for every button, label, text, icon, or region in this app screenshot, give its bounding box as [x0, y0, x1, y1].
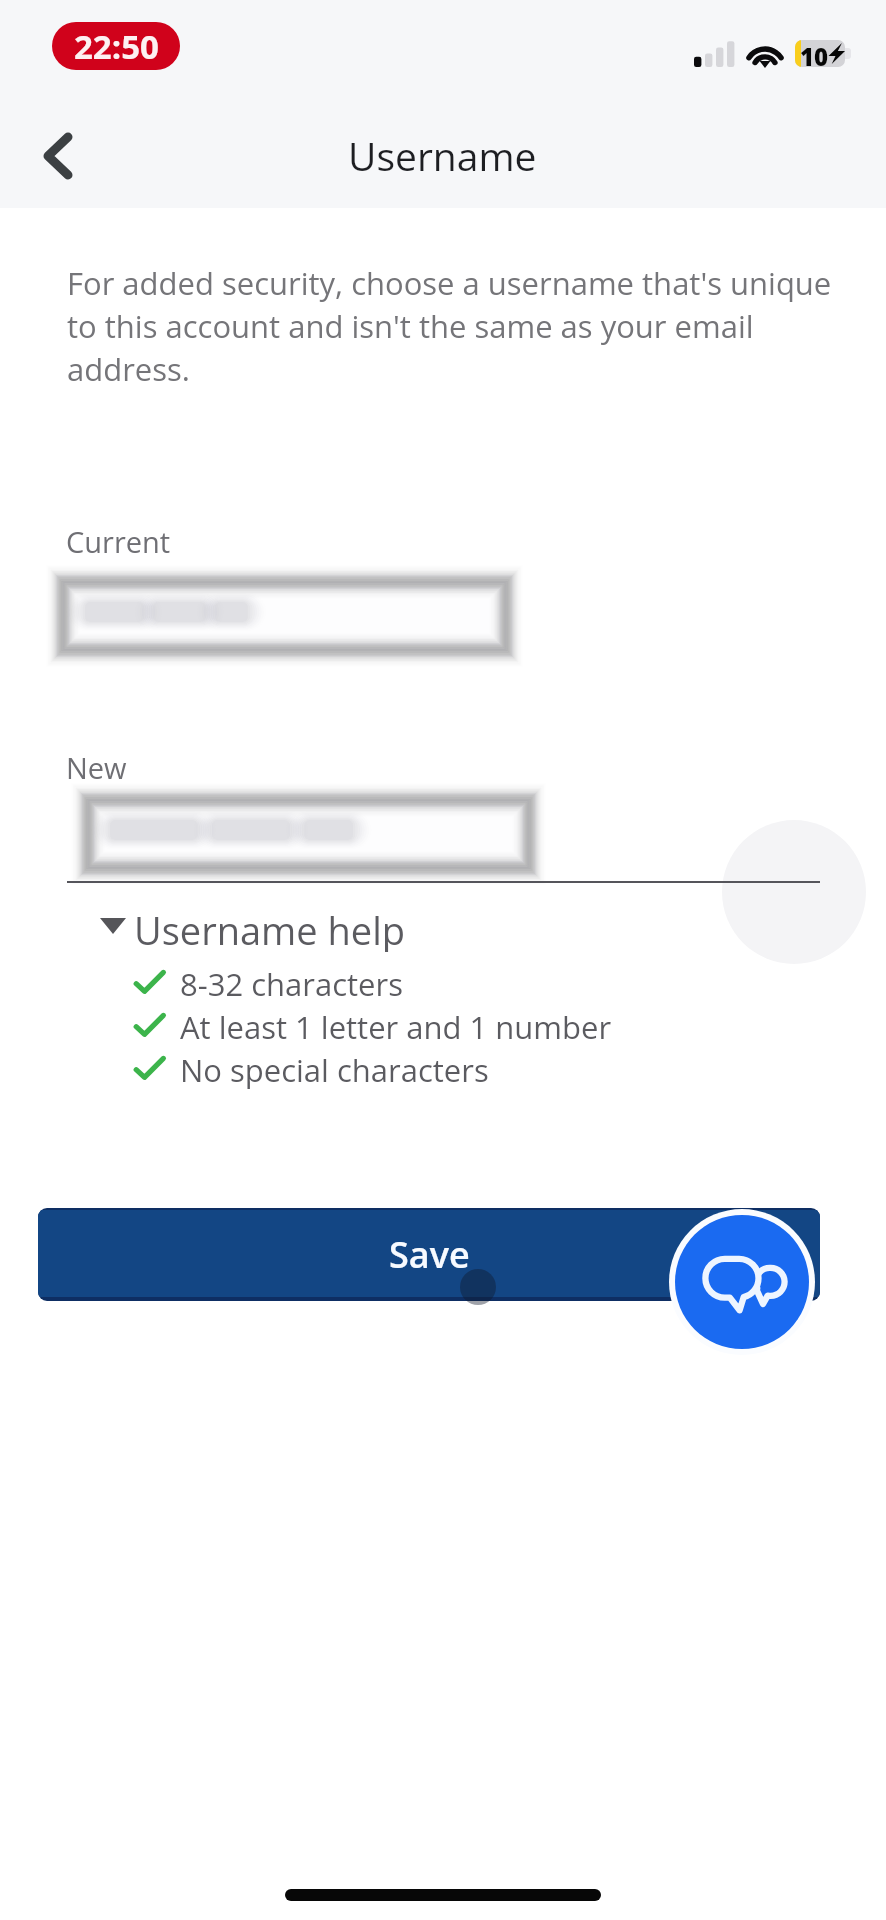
staticText: Current	[66, 522, 171, 561]
staticText: Username	[348, 129, 537, 182]
button[interactable]: Username help	[97, 904, 405, 952]
button[interactable]: Save	[38, 1208, 820, 1301]
button[interactable]	[88, 800, 529, 868]
staticText: No special characters	[180, 1049, 489, 1089]
button[interactable]: Back	[14, 120, 86, 192]
button[interactable]	[63, 582, 506, 650]
staticText: 10	[800, 40, 829, 73]
staticText: 22:50	[74, 24, 159, 69]
button[interactable]: Chat	[669, 1209, 815, 1355]
button[interactable]: 8-32 characters	[133, 963, 403, 1003]
button[interactable]: At least 1 letter and 1 number	[133, 1006, 612, 1046]
staticText: At least 1 letter and 1 number	[180, 1006, 612, 1046]
staticText: Username help	[134, 904, 405, 952]
staticText: New	[66, 748, 127, 787]
button[interactable]: No special characters	[133, 1049, 489, 1089]
staticText: 8-32 characters	[180, 963, 403, 1003]
staticText: Save	[389, 1230, 470, 1279]
staticText: For added security, choose a username th…	[67, 262, 853, 390]
